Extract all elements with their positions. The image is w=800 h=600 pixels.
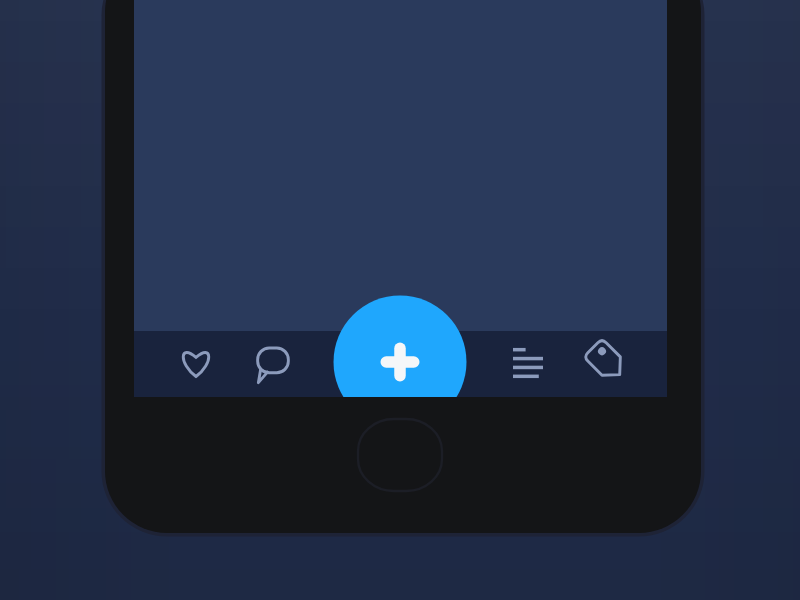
button[interactable]: Comments	[247, 333, 299, 397]
button[interactable]: Add new	[334, 296, 467, 397]
button[interactable]: Feed	[502, 333, 554, 397]
button[interactable]: Likes	[170, 333, 222, 397]
button[interactable]: Tags	[576, 333, 628, 397]
